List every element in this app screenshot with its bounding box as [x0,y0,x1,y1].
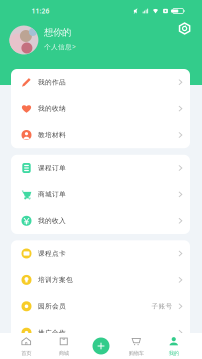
staticText: 我的收入 [38,217,66,225]
staticText: 11:26 [31,7,49,15]
button[interactable]: 我的作品 [11,69,190,95]
button[interactable]: 教培材料 [11,122,190,148]
staticText: 想你的 [44,27,71,38]
button[interactable]: 商城订单 [11,181,190,208]
staticText: 首页 [21,350,31,356]
button[interactable]: 课程订单 [11,155,190,181]
staticText: 商城 [59,350,69,356]
button[interactable]: 首页 [7,333,45,359]
button[interactable]: 园所会员 [11,293,190,319]
staticText: 园所会员 [38,302,66,310]
button[interactable]: 培训方案包 [11,267,190,293]
button[interactable]: 课程点卡 [11,240,190,267]
button[interactable]: Create [87,333,115,359]
button[interactable]: 购物车 [117,333,155,359]
button[interactable]: 商城 [45,333,82,359]
staticText: 个人信息> [44,42,76,51]
staticText: 培训方案包 [38,276,73,284]
button[interactable]: 我的收纳 [11,95,190,122]
staticText: 我的 [169,350,179,356]
staticText: 推广合作 [38,329,66,337]
staticText: 我的作品 [38,78,66,86]
button[interactable]: 个人信息> [44,42,76,51]
staticText: 子账号 [151,302,172,310]
staticText: 课程点卡 [38,249,66,258]
staticText: 课程订单 [38,164,66,172]
button[interactable]: Settings [178,22,191,35]
button[interactable]: 推广合作 [11,319,190,346]
staticText: 教培材料 [38,131,66,139]
staticText: 我的收纳 [38,104,66,113]
button[interactable]: 我的收入 [11,208,190,234]
staticText: 购物车 [129,350,144,356]
button[interactable]: 我的 [155,333,192,359]
staticText: 商城订单 [38,190,66,198]
